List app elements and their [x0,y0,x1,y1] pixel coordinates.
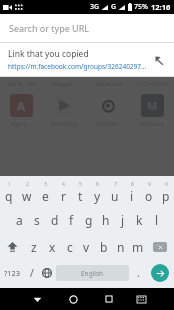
staticText: https://m.facebook.com/groups/3262402974… [8,62,148,71]
staticText: k [136,212,143,228]
staticText: Link that you copied [8,48,89,60]
staticText: h [102,212,110,228]
staticText: 6 [96,181,99,188]
staticText: e [42,188,49,204]
button[interactable]: Home [55,288,91,310]
staticText: n [117,239,125,255]
staticText: 2 [26,181,29,188]
button[interactable]: h [97,206,114,233]
staticText: apk.source [94,80,123,87]
button[interactable]: Edit query [151,52,167,68]
staticText: j [121,212,125,228]
staticText: 9 [148,181,151,188]
button[interactable]: 226008h... [86,94,130,127]
button[interactable]: k [131,206,148,233]
staticText: q [5,188,13,204]
staticText: G [111,2,117,12]
button[interactable]: 1 [0,178,18,206]
button[interactable]: 0 [157,178,174,206]
staticText: i [130,188,134,204]
staticText: 75% [134,2,148,12]
button[interactable]: g [80,206,97,233]
staticText: a [16,212,23,228]
staticText: c [67,239,73,255]
button[interactable]: 2 [18,178,36,206]
button[interactable]: Search or type URL [0,14,174,42]
button[interactable]: m [129,233,146,260]
staticText: p [162,188,170,204]
button[interactable]: Link that you copied [0,43,174,76]
button[interactable]: Backspace [146,233,174,260]
button[interactable]: z [25,233,43,260]
button[interactable]: Back [19,288,55,310]
staticText: d [51,212,59,228]
button[interactable]: Shift [0,233,25,260]
staticText: Ngt it ... [11,120,32,127]
staticText: A [17,98,26,114]
button[interactable]: 8 [123,178,140,206]
button[interactable]: a [10,206,28,233]
button[interactable]: 3 [36,178,54,206]
button[interactable]: d [46,206,63,233]
staticText: M [147,98,158,113]
staticText: g [85,212,93,228]
button[interactable]: . [131,260,146,286]
staticText: z [31,239,37,255]
staticText: Xem tiếng [51,120,78,127]
staticText: 12:16 [151,2,171,12]
button[interactable]: l [148,206,165,233]
staticText: 3 [44,181,47,188]
button[interactable]: ?123 [0,260,24,286]
button[interactable]: Change language [39,260,54,286]
button[interactable]: 6 [89,178,106,206]
staticText: 226008h... [95,120,122,127]
button[interactable]: Xem tiếng [43,94,86,127]
staticText: 5 [79,181,82,188]
button[interactable]: b [95,233,112,260]
button[interactable]: 9 [140,178,157,206]
button[interactable]: j [114,206,131,233]
button[interactable]: x [43,233,61,260]
button[interactable]: 4 [54,178,72,206]
staticText: Wallet.co [140,120,164,127]
button[interactable]: 7 [106,178,123,206]
button[interactable]: v [78,233,95,260]
button[interactable]: 5 [72,178,89,206]
button[interactable]: Recent apps [91,288,127,310]
staticText: w [22,188,32,204]
button[interactable]: Go [146,260,174,286]
staticText: f [69,212,74,228]
button[interactable]: M [130,94,174,127]
button[interactable]: s [28,206,46,233]
staticText: s [34,212,40,228]
staticText: English [81,269,104,278]
button[interactable]: A [0,94,43,127]
button[interactable]: Switch keyboard [127,288,156,310]
button[interactable]: English [56,265,129,281]
staticText: x [49,239,56,255]
staticText: m [132,239,144,255]
staticText: / [30,266,34,280]
staticText: t [78,188,83,204]
staticText: l [155,212,159,228]
staticText: . [137,266,140,280]
staticText: 4 [62,181,65,188]
staticText: u [111,188,119,204]
staticText: r [61,188,66,204]
staticText: aaTig - Tile [8,80,36,87]
staticText: ?123 [4,268,21,278]
staticText: y [94,188,101,204]
button[interactable]: c [61,233,78,260]
staticText: I.LCD1SDAC [137,80,168,87]
button[interactable]: n [112,233,129,260]
staticText: 3G [90,2,100,12]
staticText: Search or type URL [9,22,90,34]
staticText: 8 [131,181,134,188]
staticText: 7 [114,181,117,188]
staticText: 0 [165,181,168,188]
button[interactable]: / [24,260,39,286]
staticText: Blogger... [52,80,77,87]
button[interactable]: f [63,206,80,233]
staticText: 1 [8,181,11,188]
staticText: b [100,239,108,255]
